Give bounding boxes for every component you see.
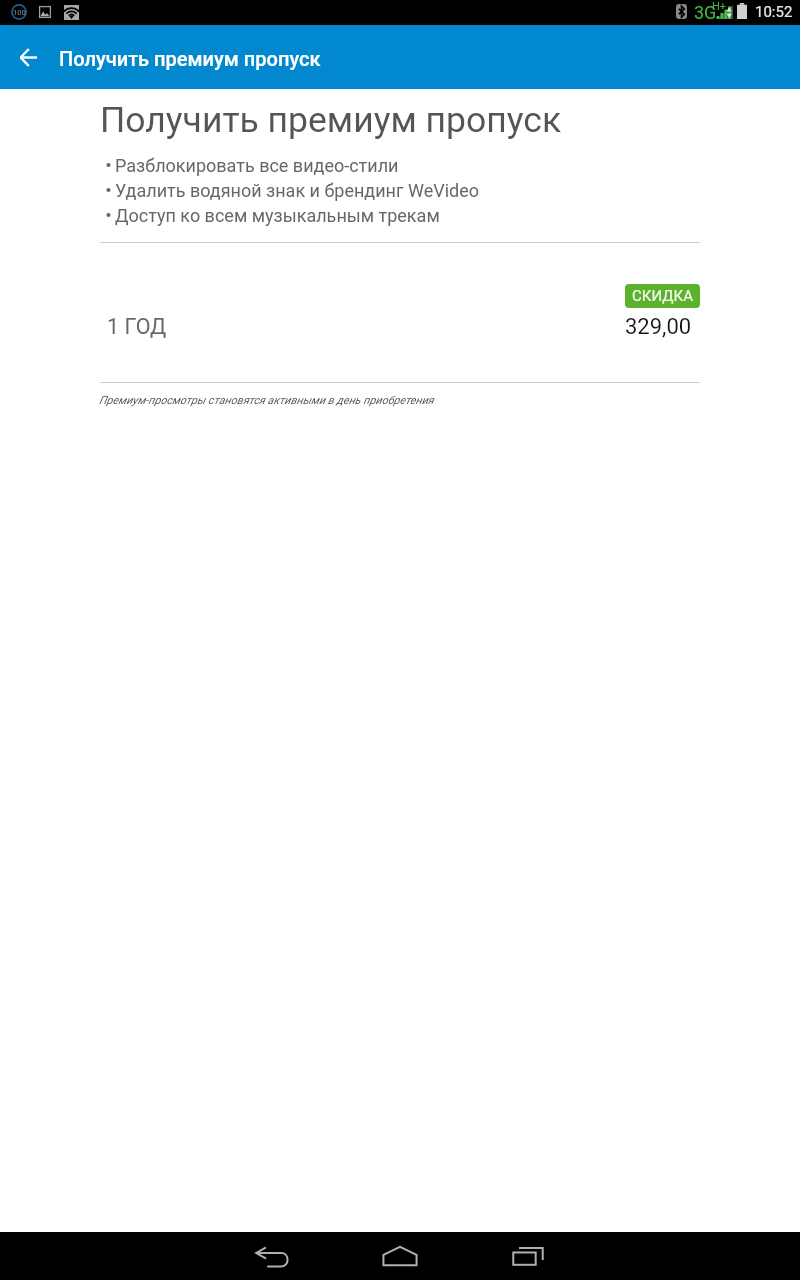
staticText: Разблокировать все видео-стили — [115, 155, 399, 176]
staticText: Получить премиум пропуск — [59, 47, 321, 70]
button[interactable]: Back — [222, 1232, 322, 1280]
staticText: Удалить водяной знак и брендинг WeVideo — [115, 180, 479, 201]
staticText: H+ — [712, 0, 727, 13]
staticText: 10:52 — [755, 3, 793, 21]
staticText: 329,00 — [625, 314, 692, 340]
staticText: СКИДКА — [632, 287, 693, 305]
button[interactable]: Back — [0, 29, 56, 85]
staticText: 1 ГОД — [107, 314, 167, 339]
button[interactable]: Recent apps — [478, 1232, 578, 1280]
staticText: 100 — [13, 8, 26, 17]
button[interactable]: Home — [350, 1232, 450, 1280]
staticText: Получить премиум пропуск — [100, 99, 562, 141]
staticText: Доступ ко всем музыкальным трекам — [115, 205, 440, 226]
staticText: 3G — [694, 2, 717, 23]
staticText: Премиум-просмотры становятся активными в… — [99, 394, 434, 407]
button[interactable]: 1 ГОД — [0, 269, 800, 339]
